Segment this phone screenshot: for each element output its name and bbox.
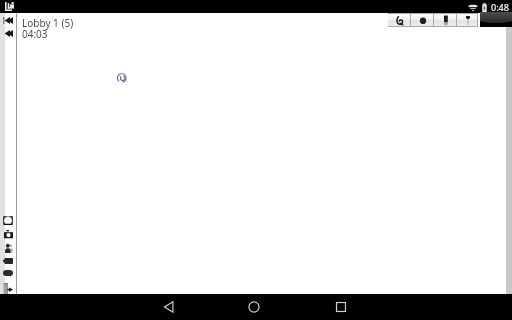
button[interactable]: Back (143, 294, 195, 320)
button[interactable]: Gallery (0, 213, 16, 227)
staticText: 04:03 (22, 27, 48, 41)
button[interactable]: Marker (0, 254, 16, 268)
button[interactable]: Options (480, 12, 512, 27)
staticText: Lobby 1 (5) (22, 16, 74, 30)
button[interactable]: Eraser (434, 13, 457, 27)
staticText: 0:48 (491, 1, 509, 13)
button[interactable]: Camera (0, 227, 16, 241)
button[interactable]: Exit (0, 281, 16, 295)
button[interactable]: Brush (411, 13, 434, 27)
button[interactable]: Pin (457, 13, 478, 27)
button[interactable]: Contacts (0, 241, 16, 255)
button[interactable]: Recents (315, 294, 367, 320)
button[interactable]: Previous (0, 26, 16, 40)
button[interactable]: Lasso (388, 13, 411, 27)
button[interactable]: Chat (0, 266, 16, 280)
button[interactable]: Skip to start (0, 13, 16, 27)
button[interactable]: Home (228, 294, 280, 320)
